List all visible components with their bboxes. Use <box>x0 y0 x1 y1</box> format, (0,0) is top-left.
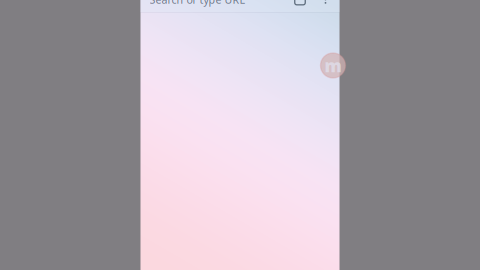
button[interactable]: More options <box>316 0 335 6</box>
staticText: m <box>324 54 341 77</box>
button[interactable]: Search or type URL <box>140 0 284 7</box>
button[interactable]: Tabs <box>284 0 316 6</box>
staticText: Search or type URL <box>149 0 245 7</box>
